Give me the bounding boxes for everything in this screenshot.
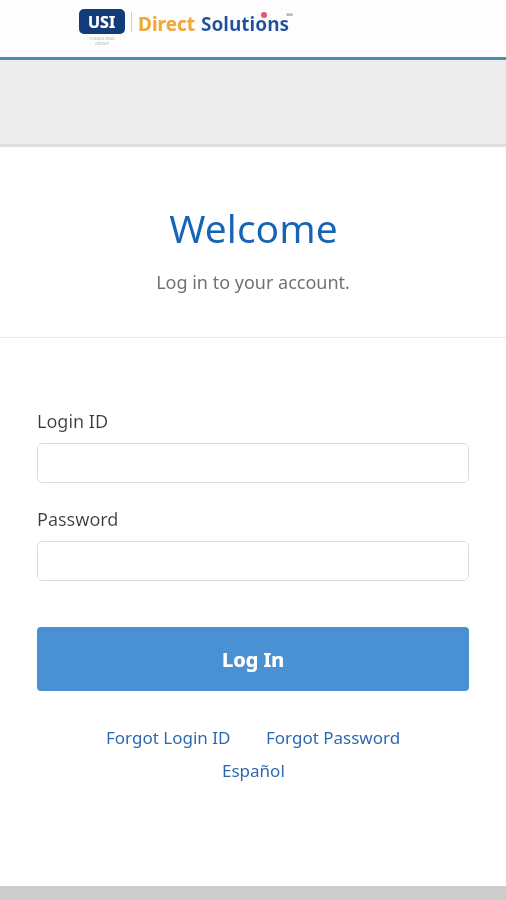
button[interactable]: USI Direct Solutions home	[79, 9, 290, 46]
staticText: Forgot Password	[266, 726, 401, 749]
button[interactable]: Forgot Password	[264, 724, 403, 751]
button[interactable]: Forgot Login ID	[104, 724, 233, 751]
button[interactable]: Login ID input	[37, 443, 469, 483]
staticText: Solutions	[201, 11, 290, 37]
staticText: Log in to your account.	[156, 270, 350, 295]
staticText: GROUP	[95, 41, 109, 46]
staticText: Direct	[138, 11, 196, 37]
staticText: Welcome	[169, 201, 338, 254]
button[interactable]: Log In	[37, 627, 469, 691]
button[interactable]: Password input	[37, 541, 469, 581]
staticText: Log In	[222, 646, 285, 673]
staticText: Password	[37, 507, 119, 532]
staticText: Forgot Login ID	[106, 726, 231, 749]
button[interactable]: Español	[220, 757, 287, 784]
staticText: CONSULTING	[89, 36, 115, 41]
staticText: Español	[222, 759, 285, 782]
staticText: Login ID	[37, 409, 109, 434]
staticText: USI	[88, 11, 116, 33]
